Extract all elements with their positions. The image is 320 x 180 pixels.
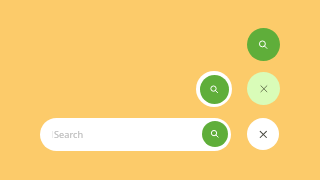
button[interactable]: Close — [247, 72, 280, 105]
button[interactable]: Search — [196, 71, 232, 107]
button[interactable]: Close — [247, 118, 279, 150]
button[interactable]: Search — [247, 28, 280, 61]
button[interactable]: Search — [202, 121, 228, 147]
staticText: Search — [54, 128, 84, 141]
button[interactable]: Search — [40, 118, 231, 151]
